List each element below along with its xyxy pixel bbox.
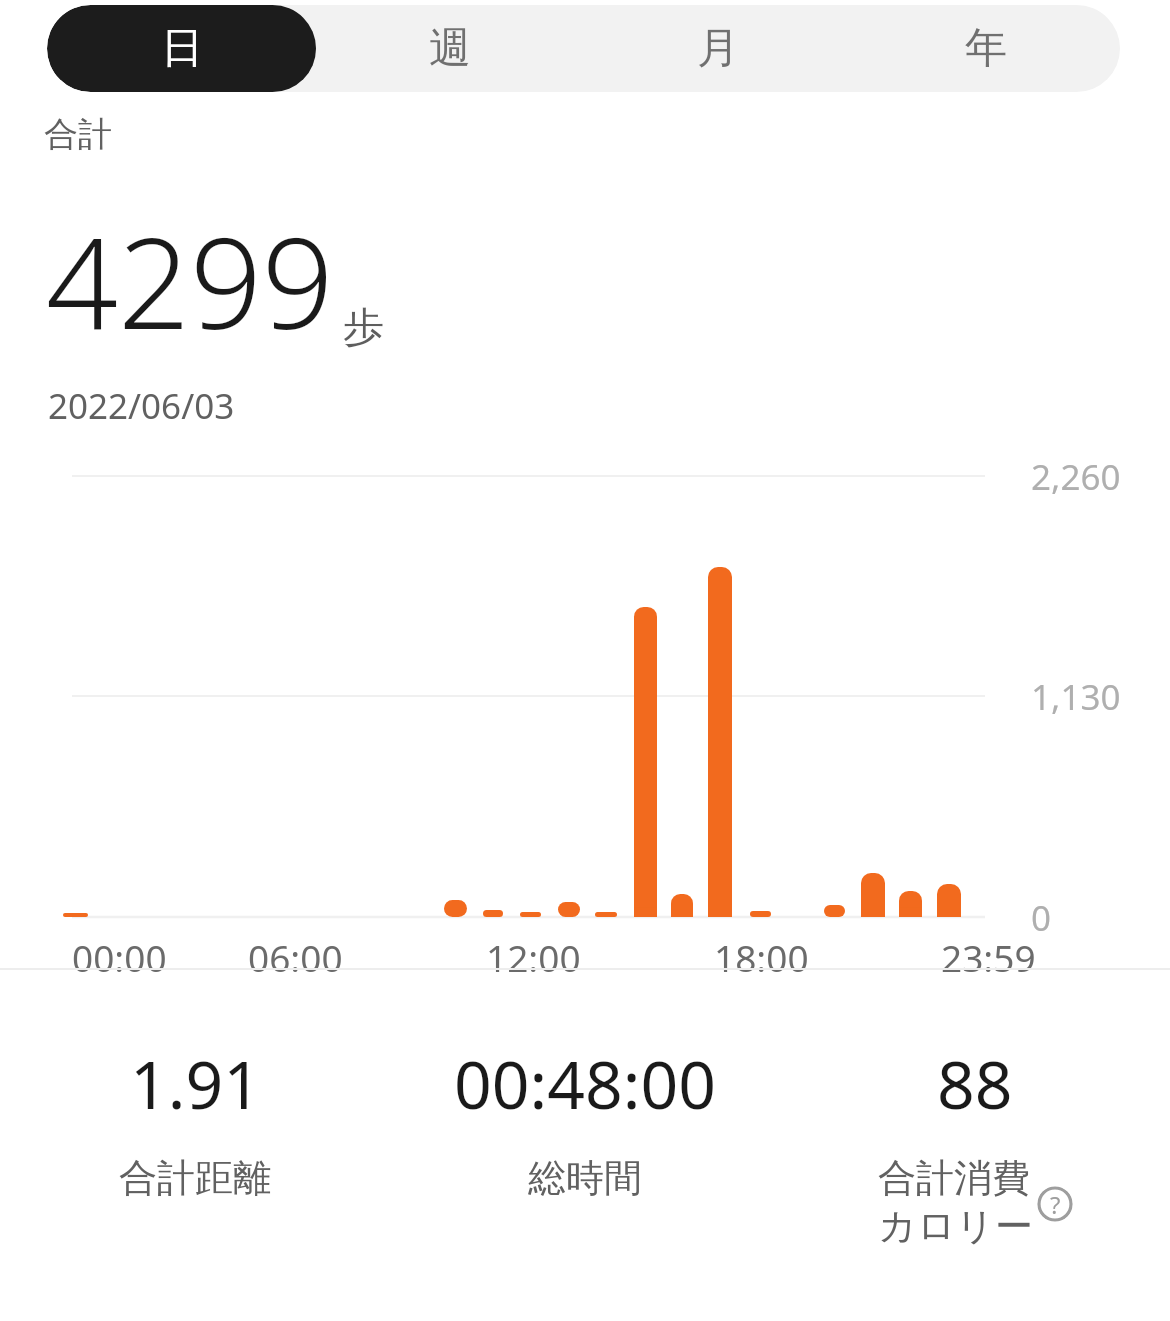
staticText: 1,130: [1031, 673, 1121, 721]
staticText: 2022/06/03: [48, 382, 235, 430]
staticText: 合計消費: [878, 1154, 1030, 1202]
button[interactable]: 年: [852, 5, 1120, 92]
staticText: 2,260: [1031, 453, 1121, 501]
button[interactable]: 00:48:00: [390, 1038, 780, 1202]
staticText: 年: [965, 22, 1007, 75]
button[interactable]: 月: [584, 5, 852, 92]
staticText: 総時間: [528, 1154, 642, 1202]
staticText: 00:00: [72, 932, 167, 982]
staticText: カロリー: [878, 1202, 1033, 1250]
staticText: 0: [1031, 894, 1052, 942]
staticText: 23:59: [941, 932, 1036, 982]
staticText: ?: [1050, 1188, 1061, 1221]
staticText: 歩: [343, 302, 384, 354]
button[interactable]: ヘルプ: [1037, 1186, 1073, 1222]
staticText: 週: [429, 22, 471, 75]
staticText: 06:00: [248, 932, 343, 982]
staticText: 日: [161, 22, 203, 75]
staticText: 合計距離: [119, 1154, 271, 1202]
staticText: 合計: [44, 113, 112, 156]
staticText: 88: [937, 1038, 1013, 1128]
button[interactable]: 88: [780, 1038, 1170, 1250]
button[interactable]: 日: [47, 5, 316, 92]
staticText: 4299: [46, 194, 334, 366]
staticText: 00:48:00: [454, 1038, 716, 1128]
staticText: 18:00: [714, 932, 809, 982]
staticText: 月: [697, 22, 739, 75]
button[interactable]: 1.91: [0, 1038, 390, 1202]
button[interactable]: 週: [316, 5, 584, 92]
staticText: 1.91: [130, 1038, 261, 1128]
staticText: 12:00: [486, 932, 581, 982]
